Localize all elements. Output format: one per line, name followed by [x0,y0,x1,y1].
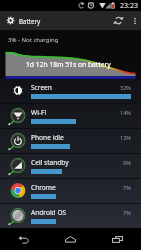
button[interactable]: Android OS [0,204,141,228]
staticText: 23:23 [120,1,138,11]
button[interactable]: Screen [0,79,141,103]
staticText: 9% [123,159,131,166]
staticText: Screen [31,83,52,92]
staticText: 7% [123,184,131,191]
staticText: Chrome [31,183,56,192]
button[interactable]: Phone idle [0,129,141,153]
button[interactable]: More options [128,11,141,30]
staticText: 12% [120,134,131,141]
button[interactable]: Chrome [0,179,141,203]
button[interactable]: Wi-Fi [0,104,141,128]
button[interactable]: Cell standby [0,154,141,178]
button[interactable]: Recent apps [94,228,141,250]
staticText: Cell standby [31,158,69,167]
staticText: 3% - Not charging [8,36,59,44]
staticText: 1d 12h 18m 51s on battery [26,60,111,69]
staticText: Android OS [31,208,67,217]
button[interactable]: Back [0,228,47,250]
staticText: Battery [19,17,41,25]
staticText: Phone idle [31,133,64,142]
staticText: 7% [123,209,131,216]
staticText: 32% [120,84,131,91]
button[interactable]: Refresh [109,11,128,30]
button[interactable]: Home [47,228,94,250]
staticText: Wi-Fi [31,108,47,117]
staticText: 14% [120,109,131,116]
